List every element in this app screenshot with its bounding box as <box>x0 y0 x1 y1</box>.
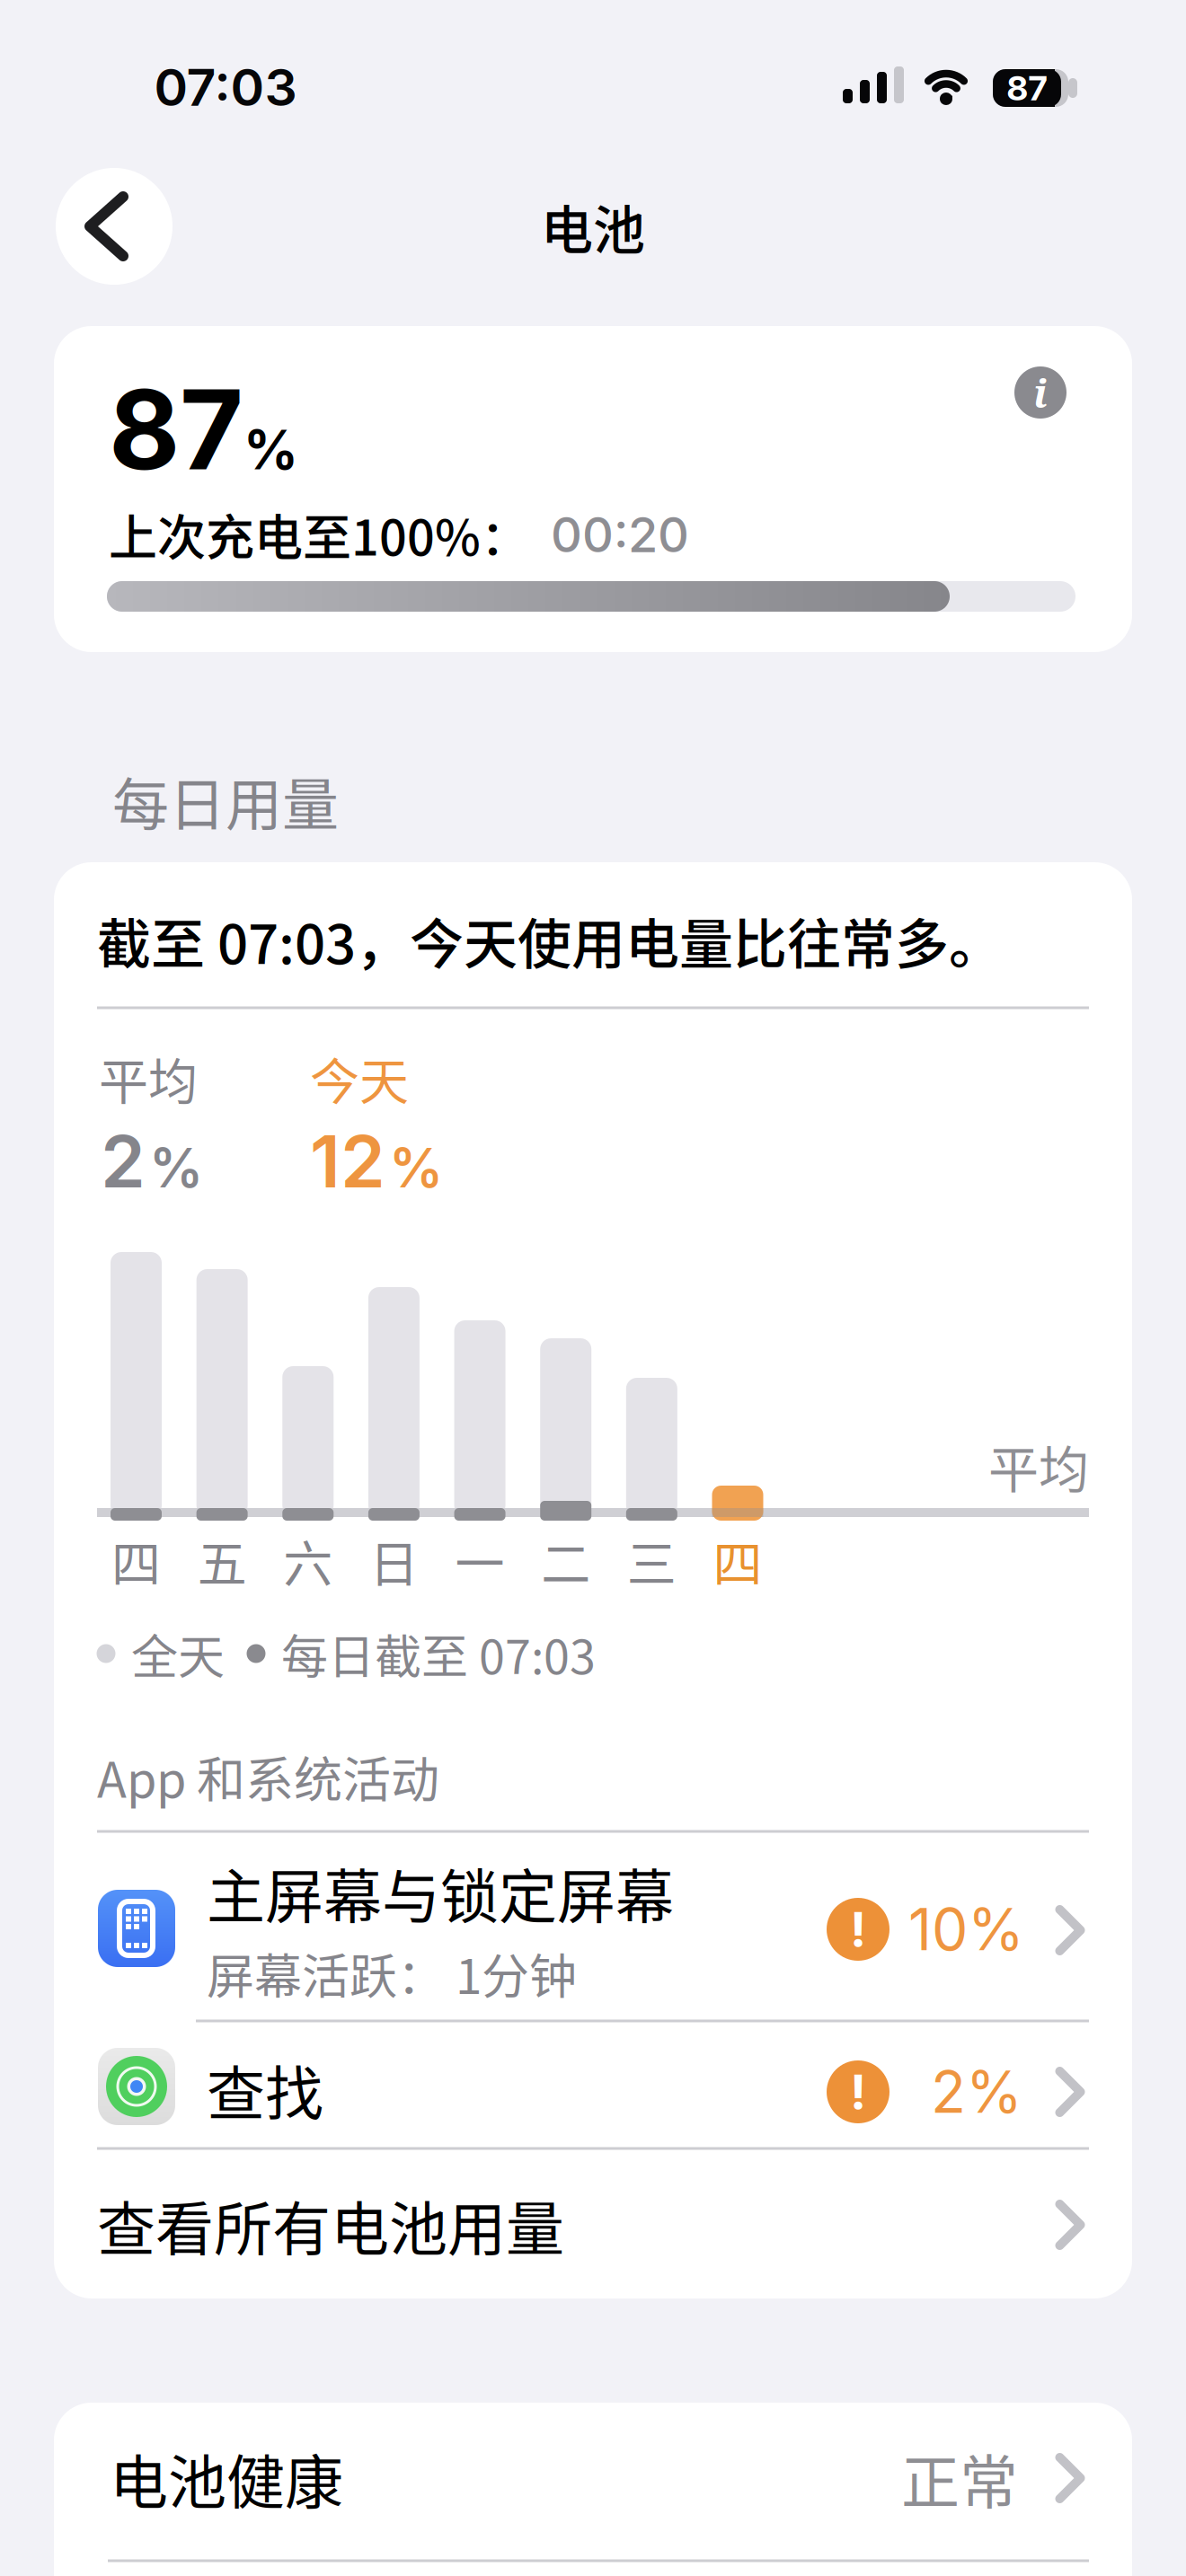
staticText: 00:20 <box>551 505 689 564</box>
staticText: 查看所有电池用量 <box>97 2183 564 2267</box>
staticText: 日 <box>369 1524 419 1596</box>
staticText: % <box>243 417 298 482</box>
button[interactable]: 电池信息 <box>1014 366 1067 419</box>
staticText: % <box>389 1135 443 1201</box>
staticText: 二 <box>541 1524 590 1596</box>
staticText: 2% <box>931 2057 1022 2127</box>
button[interactable]: 返回 <box>56 168 173 285</box>
staticText: App 和系统活动 <box>97 1741 439 1812</box>
staticText: 12 <box>310 1118 385 1205</box>
staticText: 全天 <box>131 1620 225 1687</box>
staticText: 主屏幕与锁定屏幕 <box>207 1850 674 1935</box>
staticText: 电池 <box>541 189 645 264</box>
staticText: 截至 07:03，今天使用电量比往常多。 <box>97 901 1003 979</box>
staticText: 87 <box>109 363 243 496</box>
staticText: 正常 <box>901 2436 1018 2520</box>
staticText: 平均 <box>988 1429 1089 1502</box>
staticText: ! <box>850 1900 866 1959</box>
staticText: 一 <box>455 1524 505 1596</box>
staticText: 平均 <box>99 1042 198 1114</box>
staticText: 屏幕活跃： 1分钟 <box>207 1939 577 2008</box>
staticText: % <box>149 1135 203 1201</box>
staticText: 五 <box>197 1524 247 1596</box>
staticText: ! <box>850 2063 866 2121</box>
staticText: 07:03 <box>154 56 297 118</box>
staticText: 今天 <box>310 1042 409 1114</box>
staticText: 87 <box>1007 67 1047 109</box>
staticText: 每日用量 <box>112 759 339 841</box>
staticText: 电池健康 <box>110 2436 343 2520</box>
button[interactable]: 电池健康 <box>54 2403 1132 2576</box>
staticText: 查找 <box>207 2047 323 2131</box>
staticText: 四 <box>713 1524 762 1596</box>
button[interactable]: 查看所有电池用量 <box>54 2148 1132 2298</box>
staticText: 10% <box>908 1895 1024 1964</box>
button[interactable]: 查找 <box>54 2021 1132 2148</box>
button[interactable]: 主屏幕与锁定屏幕 <box>54 1831 1132 2020</box>
staticText: 六 <box>283 1524 333 1596</box>
staticText: 上次充电至100%： <box>109 499 529 570</box>
staticText: 四 <box>111 1524 161 1596</box>
staticText: 三 <box>627 1524 676 1596</box>
staticText: i <box>1033 366 1048 419</box>
staticText: 每日截至 07:03 <box>281 1620 596 1687</box>
staticText: 2 <box>101 1118 146 1205</box>
